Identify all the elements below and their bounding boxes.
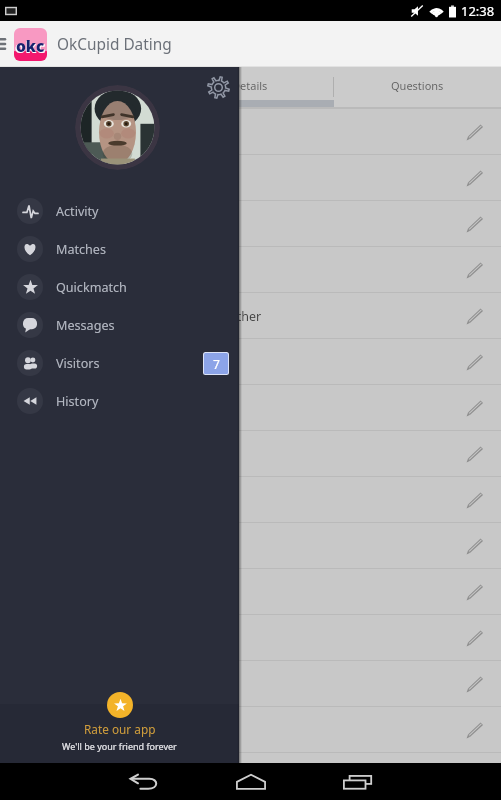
staticText: okc [15,35,46,57]
staticText: History [56,393,99,410]
button[interactable] [0,661,501,707]
staticText: Messages [56,317,115,334]
button[interactable]: Open navigation drawer [0,21,14,67]
staticText: okc [16,35,45,56]
button[interactable]: Settings [207,76,230,99]
staticText: OkCupid Dating [57,34,172,55]
button[interactable] [0,569,501,615]
button[interactable] [0,155,501,201]
button[interactable] [0,707,501,753]
button[interactable]: Activity [0,192,239,230]
staticText: 12:38 [461,2,495,20]
button[interactable]: Home [229,763,273,800]
staticText: Details [232,78,268,93]
staticText: Rate our app [84,721,156,737]
button[interactable] [0,753,501,799]
button[interactable] [0,431,501,477]
button[interactable]: Visitors [0,344,239,382]
button[interactable]: Recent apps [336,763,380,800]
staticText: Matches [56,241,106,258]
button[interactable] [0,247,501,293]
button[interactable]: Quickmatch [0,268,239,306]
button[interactable]: Questions [334,67,501,100]
button[interactable] [0,67,166,100]
staticText: 7 [213,356,220,372]
button[interactable]: Rate our app [0,704,239,763]
button[interactable]: Back [122,763,166,800]
button[interactable] [0,615,501,661]
button[interactable] [0,523,501,569]
button[interactable]: Messages [0,306,239,344]
button[interactable]: Details [166,67,333,100]
button[interactable] [0,477,501,523]
button[interactable] [0,339,501,385]
button[interactable]: Matches [0,230,239,268]
staticText: Quickmatch [56,279,127,296]
button[interactable] [0,109,501,155]
staticText: Other [227,308,262,325]
button[interactable]: History [0,382,239,420]
button[interactable] [0,385,501,431]
button[interactable]: Other [0,293,501,339]
staticText: Visitors [56,355,100,372]
button[interactable] [0,201,501,247]
button[interactable] [75,85,160,170]
staticText: Questions [391,78,444,93]
staticText: Activity [56,203,99,220]
staticText: We'll be your friend forever [62,740,177,752]
